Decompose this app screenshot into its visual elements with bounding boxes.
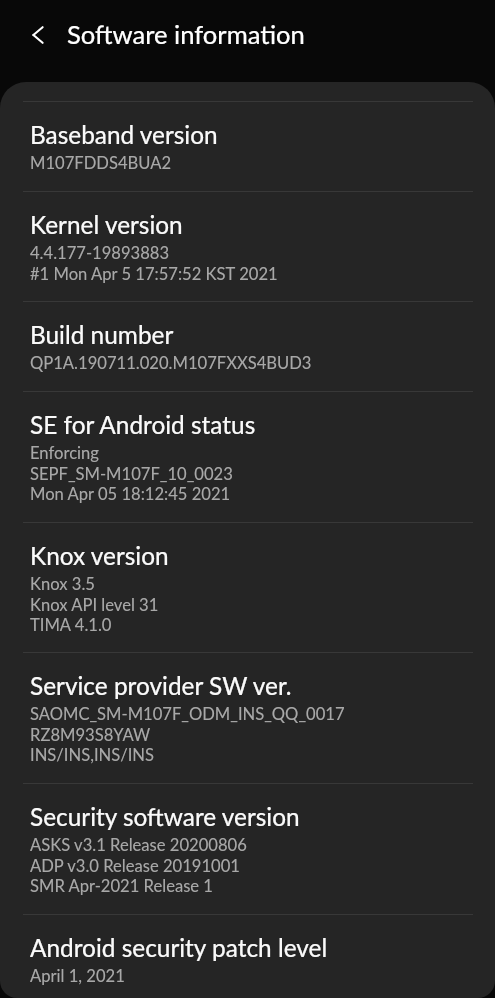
staticText: ASKS v3.1 Release 20200806 ADP v3.0 Rele…: [30, 835, 247, 895]
button[interactable]: SE for Android status: [0, 392, 495, 523]
staticText: Android security patch level: [30, 933, 328, 962]
staticText: M107FDDS4BUA2: [30, 153, 172, 173]
staticText: 4.4.177-19893883 #1 Mon Apr 5 17:57:52 K…: [30, 243, 278, 283]
button[interactable]: Knox version: [0, 523, 495, 653]
button[interactable]: Service provider SW ver.: [0, 653, 495, 784]
staticText: SAOMC_SM-M107F_ODM_INS_QQ_0017 RZ8M93S8Y…: [30, 704, 345, 764]
button[interactable]: Build number: [0, 302, 495, 392]
staticText: Service provider SW ver.: [30, 671, 292, 700]
staticText: Knox 3.5 Knox API level 31 TIMA 4.1.0: [30, 574, 159, 634]
button[interactable]: Baseband version: [0, 102, 495, 192]
staticText: QP1A.190711.020.M107FXXS4BUD3: [30, 353, 312, 373]
staticText: Enforcing SEPF_SM-M107F_10_0023 Mon Apr …: [30, 443, 233, 503]
staticText: Kernel version: [30, 210, 183, 239]
staticText: Security software version: [30, 802, 300, 831]
staticText: Knox version: [30, 541, 169, 570]
staticText: April 1, 2021: [30, 966, 125, 986]
button[interactable]: Navigate up: [16, 13, 60, 57]
button[interactable]: Security software version: [0, 784, 495, 915]
staticText: Build number: [30, 320, 174, 349]
button[interactable]: Android security patch level: [0, 915, 495, 998]
staticText: Baseband version: [30, 120, 218, 149]
button[interactable]: Kernel version: [0, 192, 495, 302]
staticText: Software information: [67, 19, 305, 50]
staticText: SE for Android status: [30, 410, 256, 439]
